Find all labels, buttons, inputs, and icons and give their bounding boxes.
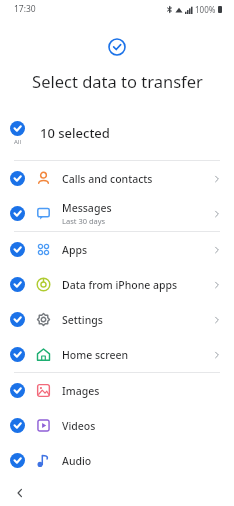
staticText: Audio bbox=[62, 454, 92, 468]
button[interactable]: Calls and contacts bbox=[0, 161, 234, 196]
button[interactable]: Home screen bbox=[0, 337, 234, 372]
staticText: 10 selected bbox=[40, 124, 110, 142]
button[interactable]: Back bbox=[10, 483, 30, 503]
button[interactable]: Settings bbox=[0, 302, 234, 337]
staticText: 100% bbox=[195, 4, 216, 15]
button[interactable]: Images bbox=[0, 373, 234, 408]
staticText: Home screen bbox=[62, 348, 129, 362]
staticText: 17:30 bbox=[14, 3, 36, 15]
staticText: Apps bbox=[62, 243, 88, 257]
button[interactable]: All bbox=[0, 114, 234, 152]
staticText: Data from iPhone apps bbox=[62, 278, 178, 292]
staticText: Calls and contacts bbox=[62, 172, 153, 186]
staticText: Select data to transfer bbox=[32, 70, 203, 92]
button[interactable]: Videos bbox=[0, 408, 234, 443]
staticText: Videos bbox=[62, 419, 96, 433]
staticText: Images bbox=[62, 384, 100, 398]
staticText: Settings bbox=[62, 313, 103, 327]
staticText: All bbox=[14, 138, 21, 146]
staticText: Messages bbox=[62, 201, 112, 215]
button[interactable]: Data from iPhone apps bbox=[0, 267, 234, 302]
button[interactable]: Audio bbox=[0, 443, 234, 478]
staticText: Last 30 days bbox=[62, 216, 106, 226]
button[interactable]: Apps bbox=[0, 232, 234, 267]
button[interactable]: Messages bbox=[0, 196, 234, 231]
